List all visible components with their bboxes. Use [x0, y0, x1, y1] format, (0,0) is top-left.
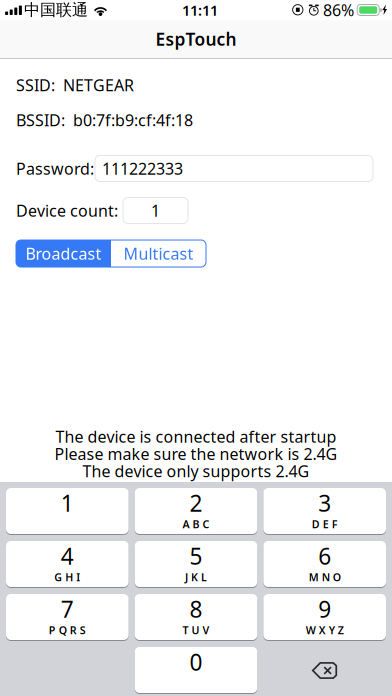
- staticText: BSSID: b0:7f:b9:cf:4f:18: [16, 109, 193, 131]
- button[interactable]: 1: [123, 197, 188, 223]
- button[interactable]: 0: [135, 647, 257, 694]
- button[interactable]: 3: [263, 488, 386, 535]
- staticText: 4: [61, 541, 74, 571]
- staticText: The device only supports 2.4G: [82, 460, 309, 482]
- staticText: T U V: [182, 623, 209, 637]
- staticText: Password:: [16, 158, 94, 179]
- staticText: 1: [61, 488, 74, 518]
- staticText: G H I: [54, 570, 80, 584]
- button[interactable]: 5: [135, 541, 257, 588]
- staticText: 5: [189, 541, 202, 571]
- staticText: 中国联通: [24, 0, 88, 20]
- staticText: Broadcast: [25, 243, 101, 264]
- staticText: SSID: NETGEAR: [16, 74, 134, 96]
- button[interactable]: Broadcast: [16, 240, 111, 267]
- staticText: M N O: [309, 570, 341, 584]
- staticText: W X Y Z: [306, 623, 344, 637]
- staticText: 1: [151, 200, 160, 221]
- staticText: Device count:: [16, 200, 118, 221]
- button[interactable]: 4: [6, 541, 129, 588]
- staticText: 11:11: [182, 0, 218, 20]
- staticText: J K L: [185, 570, 207, 584]
- staticText: EspTouch: [155, 27, 236, 50]
- button[interactable]: 6: [263, 541, 386, 588]
- staticText: 86%: [323, 0, 354, 21]
- staticText: The device is connected after startup: [55, 426, 336, 447]
- button[interactable]: [263, 647, 386, 694]
- staticText: P Q R S: [49, 623, 86, 637]
- staticText: 0: [189, 647, 202, 677]
- staticText: Multicast: [123, 243, 193, 264]
- staticText: 2: [189, 488, 202, 518]
- staticText: 6: [318, 541, 331, 571]
- staticText: 111222333: [102, 158, 183, 179]
- button[interactable]: Multicast: [111, 240, 206, 267]
- button[interactable]: 1: [6, 488, 129, 535]
- staticText: A B C: [182, 517, 209, 531]
- staticText: 7: [61, 594, 74, 624]
- button[interactable]: 7: [6, 594, 129, 641]
- staticText: 9: [318, 594, 331, 624]
- button[interactable]: 2: [135, 488, 257, 535]
- button[interactable]: 8: [135, 594, 257, 641]
- staticText: 3: [318, 488, 331, 518]
- staticText: D E F: [312, 517, 338, 531]
- button[interactable]: 111222333: [95, 155, 373, 181]
- staticText: Please make sure the network is 2.4G: [54, 443, 337, 464]
- button[interactable]: 9: [263, 594, 386, 641]
- staticText: 8: [189, 594, 202, 624]
